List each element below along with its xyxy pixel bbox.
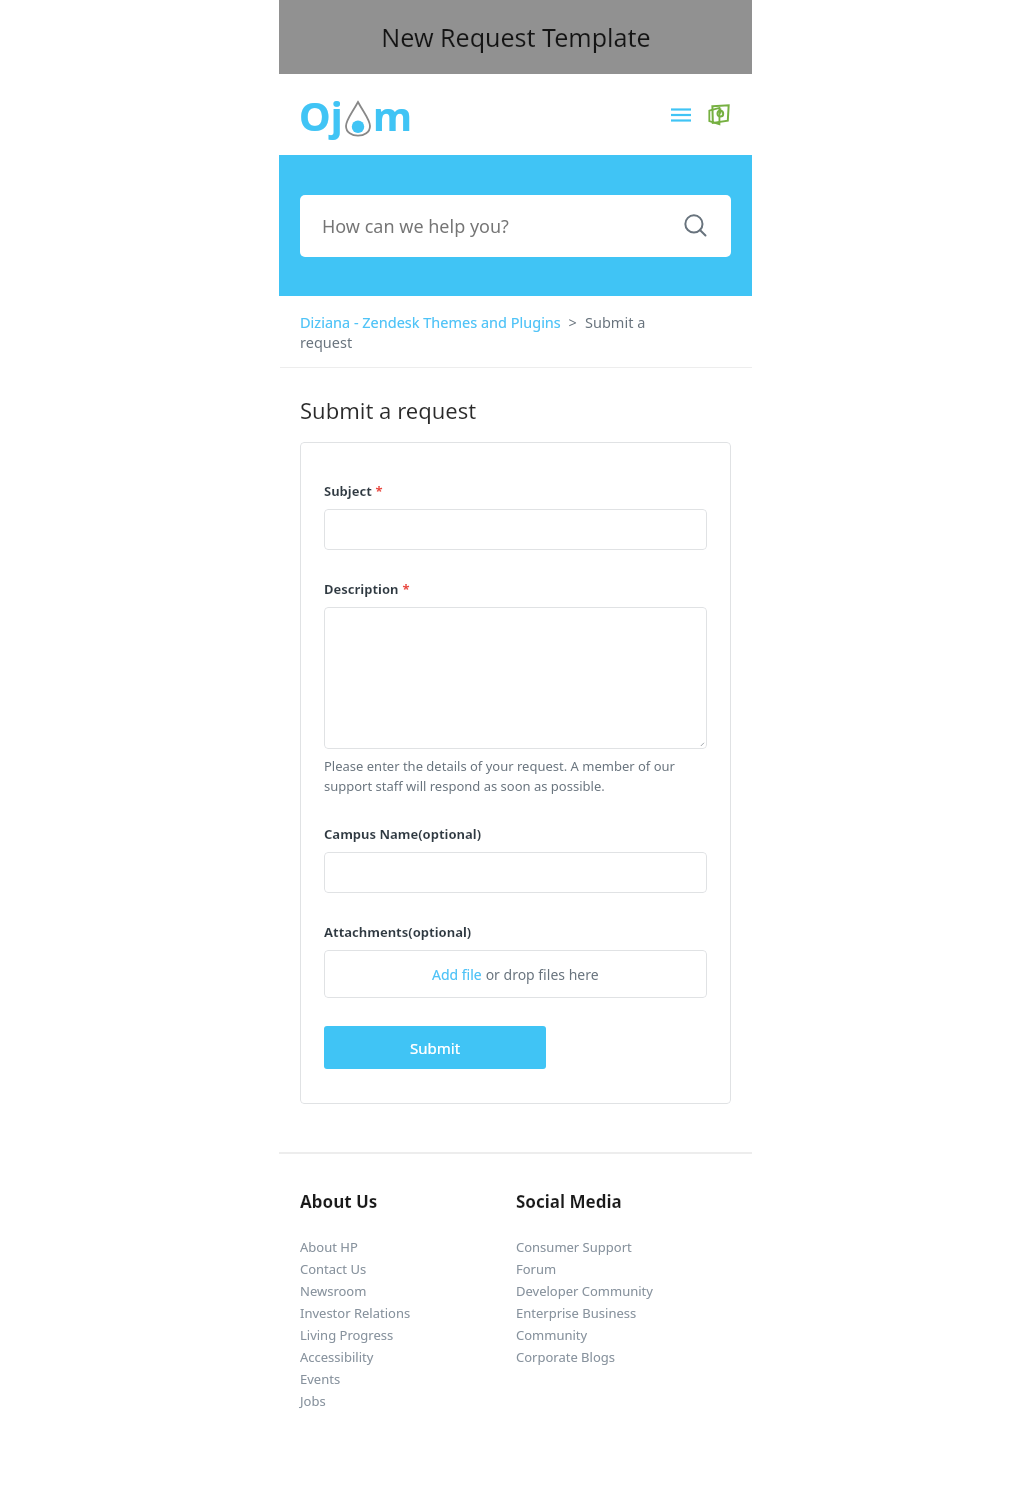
staticText: Newsroom: [300, 1282, 367, 1300]
button[interactable]: [324, 852, 707, 893]
staticText: Social Media: [516, 1190, 622, 1213]
button[interactable]: Enterprise Business: [516, 1304, 742, 1322]
button[interactable]: Jobs: [300, 1392, 516, 1410]
button[interactable]: Accessibility: [300, 1348, 516, 1366]
button[interactable]: Contact Us: [300, 1260, 516, 1278]
staticText: Diziana - Zendesk Themes and Plugins: [300, 312, 561, 332]
staticText: Living Progress: [300, 1326, 394, 1344]
button[interactable]: Newsroom: [300, 1282, 516, 1300]
button[interactable]: Events: [300, 1370, 516, 1388]
button[interactable]: Forum: [516, 1260, 742, 1278]
staticText: Corporate Blogs: [516, 1348, 616, 1366]
staticText: *: [372, 482, 383, 500]
button[interactable]: [324, 607, 707, 749]
staticText: About Us: [300, 1190, 378, 1213]
staticText: Accessibility: [300, 1348, 374, 1366]
staticText: request: [300, 332, 353, 352]
staticText: Consumer Support: [516, 1238, 632, 1256]
staticText: Forum: [516, 1260, 557, 1278]
staticText: Enterprise Business: [516, 1304, 637, 1322]
staticText: >: [561, 312, 585, 332]
staticText: New Request Template: [381, 20, 651, 54]
staticText: Investor Relations: [300, 1304, 411, 1322]
staticText: Attachments(optional): [324, 923, 472, 941]
button[interactable]: [324, 509, 707, 550]
staticText: *: [399, 580, 410, 598]
staticText: Submit a: [585, 312, 646, 332]
staticText: Oj: [299, 88, 343, 142]
staticText: Campus Name(optional): [324, 825, 482, 843]
staticText: How can we help you?: [322, 214, 509, 239]
staticText: Please enter the details of your request…: [324, 757, 707, 795]
staticText: or drop files here: [482, 965, 599, 984]
button[interactable]: How can we help you?: [300, 195, 731, 257]
button[interactable]: About HP: [300, 1238, 516, 1256]
staticText: Contact Us: [300, 1260, 367, 1278]
staticText: Jobs: [300, 1392, 326, 1410]
staticText: Community: [516, 1326, 588, 1344]
button[interactable]: Add file: [324, 950, 707, 998]
staticText: Developer Community: [516, 1282, 653, 1300]
button[interactable]: Guides: [704, 100, 734, 130]
button[interactable]: Corporate Blogs: [516, 1348, 742, 1366]
button[interactable]: Investor Relations: [300, 1304, 516, 1322]
staticText: Subject: [324, 482, 372, 500]
button[interactable]: Menu: [668, 102, 694, 128]
staticText: m: [373, 88, 412, 142]
staticText: Add file: [432, 965, 482, 984]
staticText: Description: [324, 580, 399, 598]
staticText: Submit: [410, 1038, 461, 1058]
staticText: Submit a request: [300, 395, 477, 425]
button[interactable]: Consumer Support: [516, 1238, 742, 1256]
staticText: About HP: [300, 1238, 358, 1256]
button[interactable]: Developer Community: [516, 1282, 742, 1300]
button[interactable]: Living Progress: [300, 1326, 516, 1344]
button[interactable]: Submit: [324, 1026, 546, 1069]
button[interactable]: Community: [516, 1326, 742, 1344]
button[interactable]: Diziana - Zendesk Themes and Plugins: [300, 312, 561, 332]
staticText: Events: [300, 1370, 341, 1388]
